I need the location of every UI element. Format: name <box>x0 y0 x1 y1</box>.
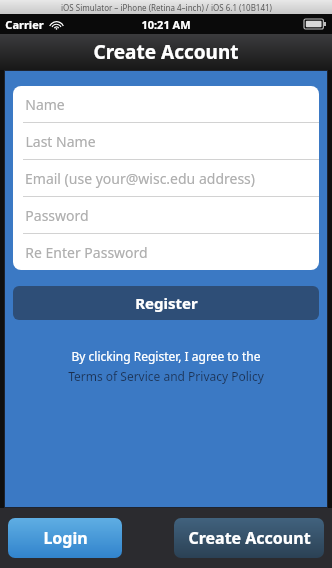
staticText: Terms of Service and Privacy Policy <box>68 368 264 384</box>
staticText: By clicking Register, I agree to the <box>71 348 261 364</box>
staticText: Register <box>135 293 198 313</box>
button[interactable]: Last Name <box>13 123 319 159</box>
button[interactable]: Name <box>13 86 319 122</box>
other: Battery <box>304 19 326 29</box>
staticText: iOS Simulator – iPhone (Retina 4–inch) /… <box>61 2 272 13</box>
staticText: Password <box>25 206 89 225</box>
staticText: Last Name <box>25 132 96 151</box>
button[interactable]: Register <box>13 286 319 320</box>
button[interactable]: Password <box>13 197 319 233</box>
button[interactable]: Terms of Service and Privacy Policy <box>68 368 264 384</box>
button[interactable]: Email (use your@wisc.edu address) <box>13 160 319 196</box>
button[interactable]: Login <box>8 518 122 558</box>
button[interactable]: Re Enter Password <box>13 234 319 270</box>
staticText: Login <box>43 527 88 549</box>
staticText: Re Enter Password <box>25 243 148 262</box>
staticText: Create Account <box>188 527 311 549</box>
staticText: 10:21 AM <box>141 17 191 32</box>
staticText: Carrier <box>5 17 44 32</box>
button[interactable]: Create Account <box>174 518 324 558</box>
other: Wi-Fi signal <box>50 20 63 30</box>
staticText: Create Account <box>93 39 239 65</box>
staticText: Email (use your@wisc.edu address) <box>25 169 255 188</box>
staticText: Name <box>25 95 65 114</box>
